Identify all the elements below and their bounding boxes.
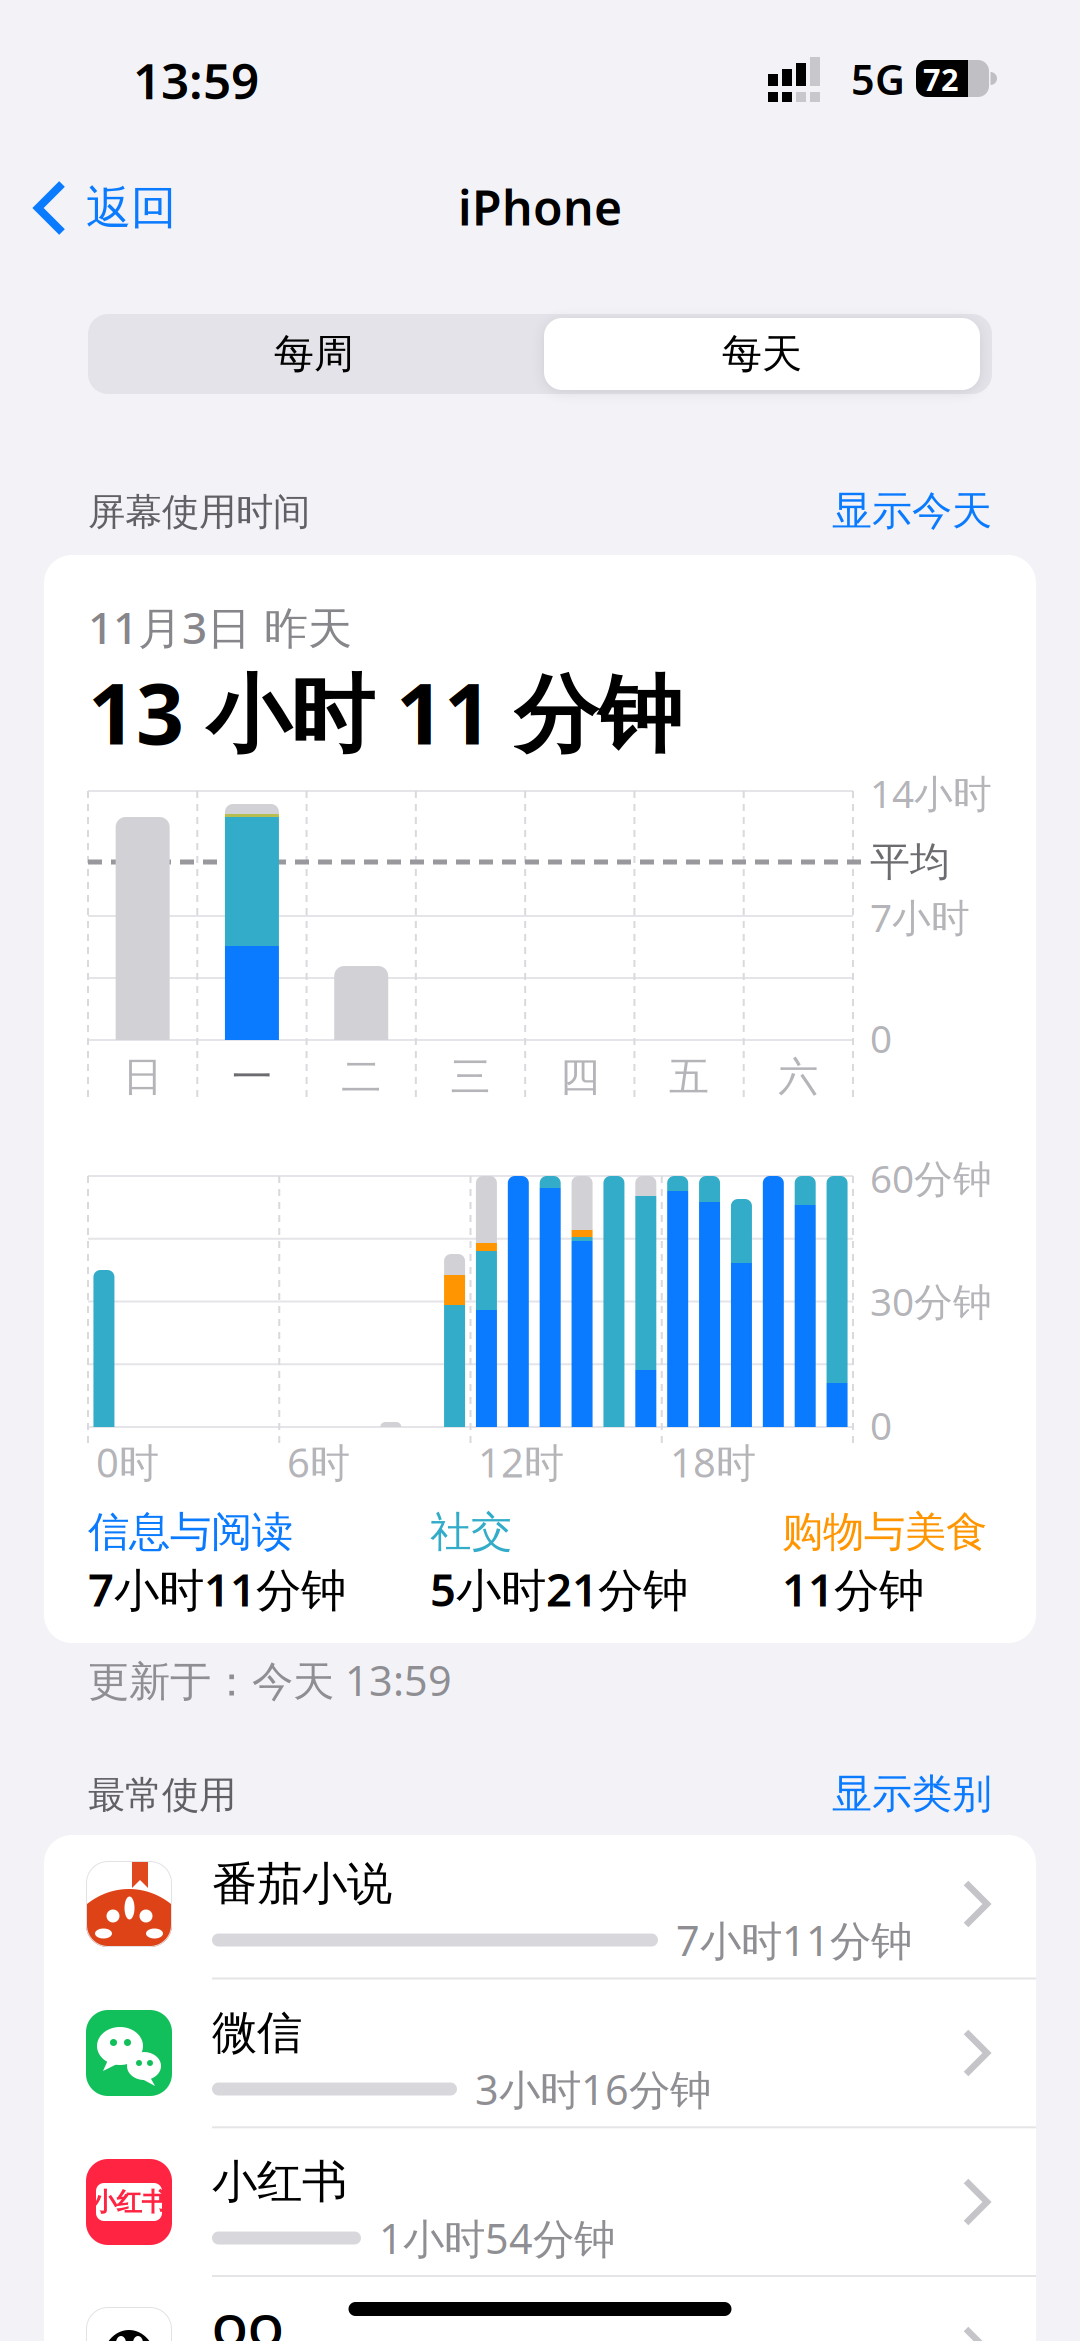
staticText: 11月3日 昨天 (88, 598, 352, 656)
staticText: 0时 (96, 1435, 159, 1488)
staticText: 3小时16分钟 (475, 2062, 711, 2116)
staticText: 每周 (274, 329, 354, 378)
staticText: 11分钟 (782, 1559, 924, 1619)
staticText: 返回 (86, 180, 176, 236)
staticText: 1小时54分钟 (379, 2211, 615, 2265)
staticText: 60分钟 (870, 1152, 992, 1204)
staticText: 微信 (212, 2005, 302, 2061)
staticText: 显示类别 (832, 1769, 992, 1818)
staticText: 13:59 (133, 47, 259, 113)
staticText: 每天 (722, 329, 802, 378)
staticText: 0 (870, 1012, 892, 1064)
staticText: 显示今天 (832, 486, 992, 535)
staticText: 13 小时 11 分钟 (88, 656, 682, 768)
staticText: 小红书 (212, 2154, 347, 2210)
staticText: 一 (232, 1052, 272, 1101)
staticText: 二 (341, 1052, 381, 1101)
staticText: 四 (560, 1052, 600, 1101)
staticText: 小红书 (91, 2186, 166, 2217)
staticText: 日 (123, 1052, 163, 1101)
staticText: 0 (870, 1399, 892, 1451)
staticText: 屏幕使用时间 (88, 489, 310, 535)
staticText: QQ (212, 2300, 284, 2341)
staticText: 7小时11分钟 (676, 1913, 912, 1967)
staticText: 六 (778, 1052, 818, 1101)
staticText: 30分钟 (870, 1275, 992, 1327)
staticText: 更新于：今天 13:59 (88, 1653, 452, 1707)
staticText: 番茄小说 (212, 1856, 392, 1912)
staticText: 12时 (478, 1435, 564, 1488)
staticText: 7小时11分钟 (88, 1559, 346, 1619)
staticText: 五 (669, 1052, 709, 1101)
staticText: iPhone (458, 175, 622, 239)
staticText: 5G (851, 52, 905, 106)
staticText: 7小时 (870, 891, 970, 943)
staticText: 6时 (287, 1435, 350, 1488)
staticText: 购物与美食 (782, 1507, 987, 1557)
staticText: 平均 (870, 837, 950, 886)
staticText: 18时 (670, 1435, 756, 1488)
staticText: 三 (450, 1052, 490, 1101)
staticText: 信息与阅读 (88, 1507, 293, 1557)
staticText: 14小时 (870, 767, 992, 819)
staticText: 社交 (430, 1507, 512, 1557)
staticText: 72 (923, 59, 959, 99)
staticText: 5小时21分钟 (430, 1559, 688, 1619)
staticText: 最常使用 (88, 1772, 236, 1818)
